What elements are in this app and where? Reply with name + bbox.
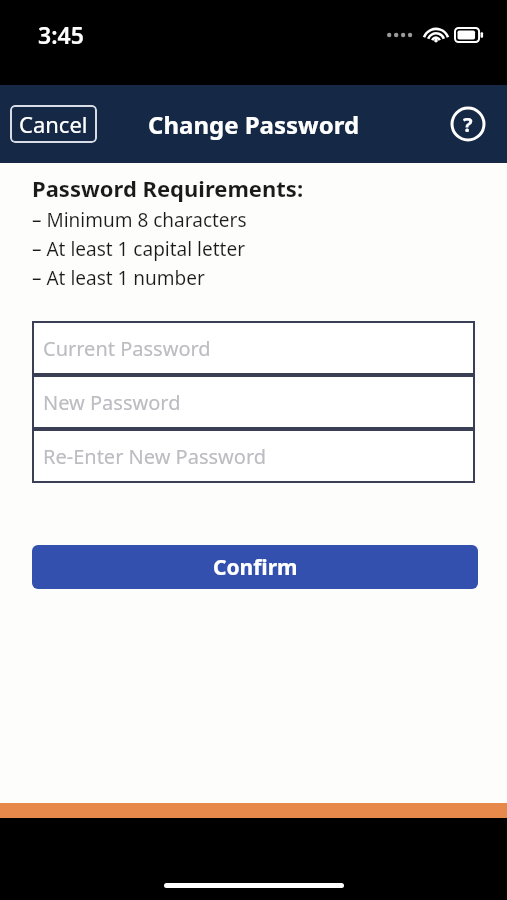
button[interactable]: Current Password <box>32 321 475 375</box>
staticText: Confirm <box>213 553 298 582</box>
staticText: Change Password <box>148 108 360 141</box>
button[interactable]: Confirm <box>32 545 478 589</box>
staticText: Re-Enter New Password <box>43 443 267 470</box>
staticText: – At least 1 number <box>32 265 205 291</box>
staticText: ? <box>463 111 473 138</box>
button[interactable]: New Password <box>32 375 475 429</box>
staticText: – At least 1 capital letter <box>32 236 245 262</box>
button[interactable]: Help <box>450 106 486 142</box>
staticText: – Minimum 8 characters <box>32 207 247 233</box>
staticText: 3:45 <box>38 19 84 50</box>
staticText: Password Requirements: <box>32 173 304 203</box>
button[interactable]: Re-Enter New Password <box>32 429 475 483</box>
staticText: New Password <box>43 389 181 416</box>
staticText: Cancel <box>19 109 88 139</box>
button[interactable]: Cancel <box>10 105 97 143</box>
staticText: Current Password <box>43 335 211 362</box>
